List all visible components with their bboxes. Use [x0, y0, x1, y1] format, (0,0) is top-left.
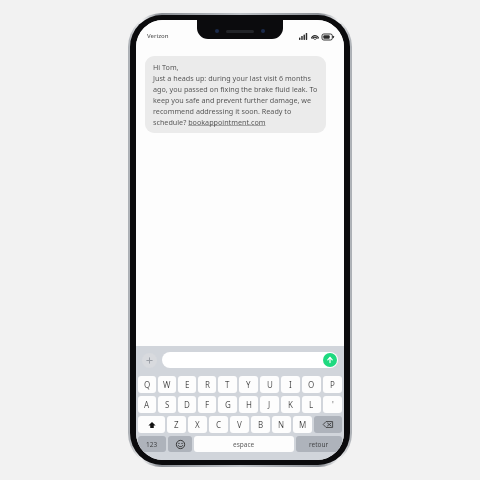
- button[interactable]: V: [230, 416, 249, 433]
- button[interactable]: R: [198, 376, 216, 393]
- staticText: M: [299, 419, 307, 430]
- staticText: X: [195, 419, 200, 430]
- staticText: N: [278, 419, 285, 430]
- button[interactable]: J: [260, 396, 279, 413]
- staticText: P: [330, 379, 335, 390]
- staticText: L: [309, 399, 314, 410]
- button[interactable]: Emoji: [168, 436, 192, 452]
- staticText: J: [268, 399, 271, 410]
- button[interactable]: O: [302, 376, 321, 393]
- button[interactable]: retour: [296, 436, 342, 452]
- button[interactable]: espace: [194, 436, 294, 452]
- staticText: Hi Tom, Just a heads up: during your las…: [153, 62, 318, 127]
- button[interactable]: Shift: [138, 416, 165, 433]
- button[interactable]: T: [218, 376, 237, 393]
- button[interactable]: Hi Tom, Just a heads up: during your las…: [145, 56, 326, 133]
- button[interactable]: A: [138, 396, 156, 413]
- staticText: C: [216, 419, 222, 430]
- staticText: 123: [146, 440, 158, 449]
- button[interactable]: S: [158, 396, 176, 413]
- button[interactable]: N: [272, 416, 291, 433]
- button[interactable]: 123: [138, 436, 166, 452]
- staticText: E: [185, 379, 190, 390]
- button[interactable]: H: [239, 396, 258, 413]
- button[interactable]: ': [323, 396, 342, 413]
- button[interactable]: U: [260, 376, 279, 393]
- staticText: S: [165, 399, 170, 410]
- staticText: D: [184, 399, 190, 410]
- button[interactable]: D: [178, 396, 196, 413]
- button[interactable]: Send: [162, 352, 338, 368]
- button[interactable]: G: [218, 396, 237, 413]
- staticText: R: [205, 379, 210, 390]
- staticText: F: [205, 399, 210, 410]
- button[interactable]: Z: [167, 416, 186, 433]
- staticText: U: [267, 379, 273, 390]
- staticText: B: [258, 419, 264, 430]
- staticText: espace: [233, 440, 255, 449]
- staticText: O: [308, 379, 315, 390]
- staticText: K: [288, 399, 293, 410]
- button[interactable]: Send: [323, 353, 337, 367]
- staticText: Y: [246, 379, 251, 390]
- button[interactable]: F: [198, 396, 216, 413]
- staticText: A: [144, 399, 150, 410]
- staticText: I: [289, 379, 292, 390]
- button[interactable]: C: [209, 416, 228, 433]
- button[interactable]: X: [188, 416, 207, 433]
- staticText: H: [246, 399, 252, 410]
- staticText: retour: [309, 440, 329, 449]
- staticText: V: [237, 419, 242, 430]
- button[interactable]: M: [293, 416, 312, 433]
- staticText: G: [225, 399, 231, 410]
- staticText: Q: [144, 379, 151, 390]
- button[interactable]: I: [281, 376, 300, 393]
- button[interactable]: B: [251, 416, 270, 433]
- button[interactable]: Delete: [314, 416, 342, 433]
- button[interactable]: L: [302, 396, 321, 413]
- staticText: Z: [174, 419, 179, 430]
- button[interactable]: P: [323, 376, 342, 393]
- staticText: ': [332, 399, 334, 410]
- button[interactable]: E: [178, 376, 196, 393]
- button[interactable]: Q: [138, 376, 156, 393]
- button[interactable]: Y: [239, 376, 258, 393]
- staticText: T: [225, 379, 230, 390]
- staticText: Verizon: [147, 32, 169, 40]
- button[interactable]: Add attachment: [142, 353, 157, 368]
- button[interactable]: K: [281, 396, 300, 413]
- button[interactable]: W: [158, 376, 176, 393]
- staticText: W: [163, 379, 171, 390]
